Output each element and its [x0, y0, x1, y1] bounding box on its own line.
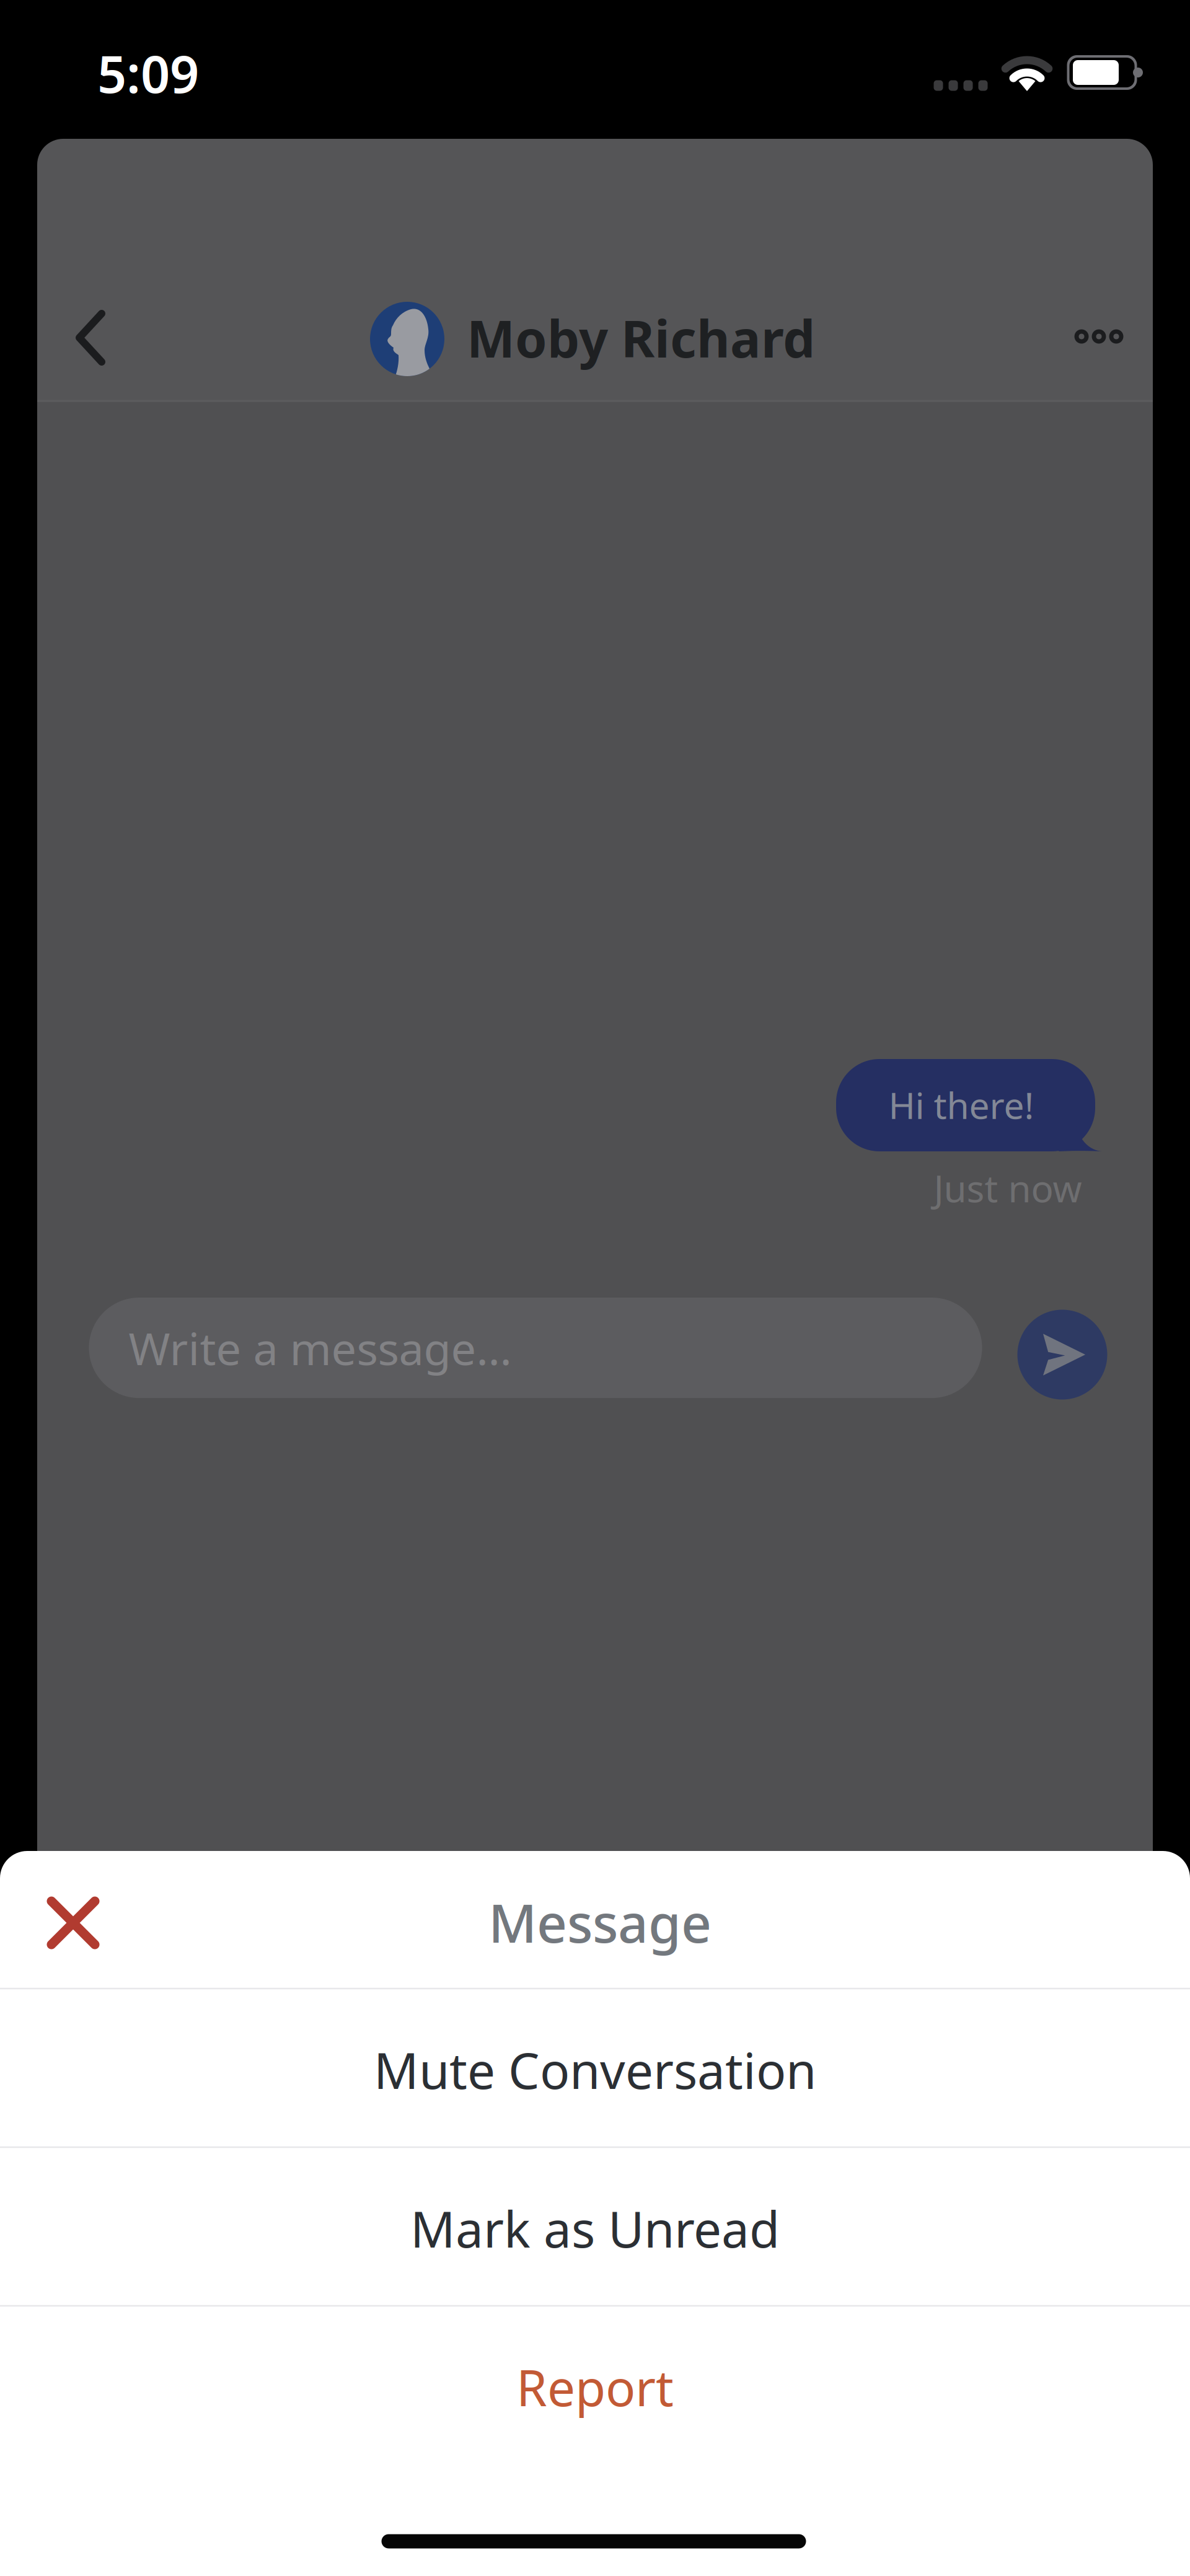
staticText: Just now [934, 1163, 1082, 1213]
staticText: Hi there! [888, 1081, 1034, 1129]
button[interactable]: Write a message [89, 1298, 982, 1398]
staticText: Message [488, 1887, 712, 1957]
staticText: 5:09 [97, 39, 199, 107]
button[interactable]: More options [1074, 329, 1123, 344]
button[interactable]: Back [74, 309, 107, 366]
button[interactable]: Mark as Unread [0, 2150, 1190, 2307]
button[interactable]: Close [48, 1898, 98, 1948]
staticText: Report [516, 2354, 674, 2420]
button[interactable]: Send [1017, 1310, 1107, 1400]
button[interactable]: Report [0, 2308, 1190, 2466]
staticText: Moby Richard [467, 304, 815, 372]
button[interactable]: Moby Richard profile [370, 302, 444, 376]
staticText: Write a message... [129, 1318, 512, 1377]
button[interactable]: Mute Conversation [0, 1991, 1190, 2148]
staticText: Mark as Unread [410, 2195, 780, 2261]
staticText: Mute Conversation [374, 2037, 816, 2103]
